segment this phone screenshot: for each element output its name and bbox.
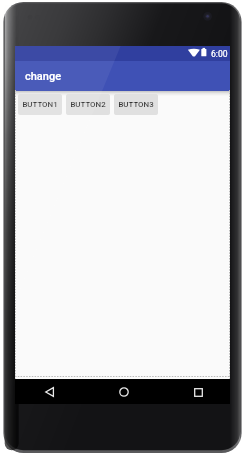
staticText: BUTTON3 — [118, 100, 154, 109]
staticText: BUTTON2 — [70, 100, 106, 109]
button[interactable]: Back — [45, 387, 54, 397]
button[interactable]: Recents — [194, 388, 203, 397]
staticText: 6:00 — [211, 49, 228, 59]
button[interactable]: BUTTON2 — [66, 94, 110, 115]
button[interactable]: BUTTON1 — [18, 94, 62, 115]
staticText: BUTTON1 — [22, 100, 58, 109]
button[interactable]: BUTTON3 — [114, 94, 158, 115]
button[interactable]: Home — [119, 387, 129, 397]
staticText: change — [25, 70, 62, 83]
